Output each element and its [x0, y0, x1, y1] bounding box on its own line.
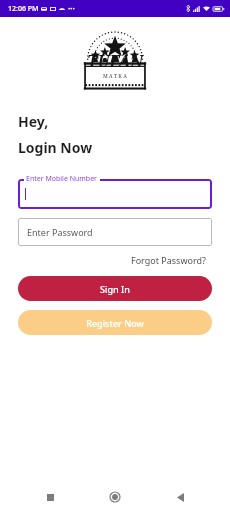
- staticText: Enter Password: [27, 226, 93, 238]
- staticText: Forgot Password?: [131, 254, 206, 266]
- staticText: Login Now: [18, 138, 93, 157]
- staticText: 12:06 PM: [8, 4, 39, 14]
- staticText: M A T K A: [103, 73, 127, 80]
- button[interactable]: Forgot Password?: [129, 251, 208, 269]
- button[interactable]: Sign In: [18, 276, 212, 301]
- staticText: Sign In: [100, 283, 130, 295]
- button[interactable]: [18, 179, 212, 209]
- staticText: •••: [68, 5, 75, 13]
- button[interactable]: Back: [165, 482, 195, 512]
- button[interactable]: Register Now: [18, 310, 212, 335]
- staticText: TUFAN: [87, 50, 143, 72]
- staticText: Hey,: [18, 112, 49, 131]
- staticText: Enter Mobile Number: [26, 174, 98, 184]
- button[interactable]: Recent apps: [35, 482, 65, 512]
- staticText: Register Now: [86, 317, 144, 329]
- button[interactable]: Enter Password: [18, 218, 212, 246]
- button[interactable]: Home: [100, 482, 130, 512]
